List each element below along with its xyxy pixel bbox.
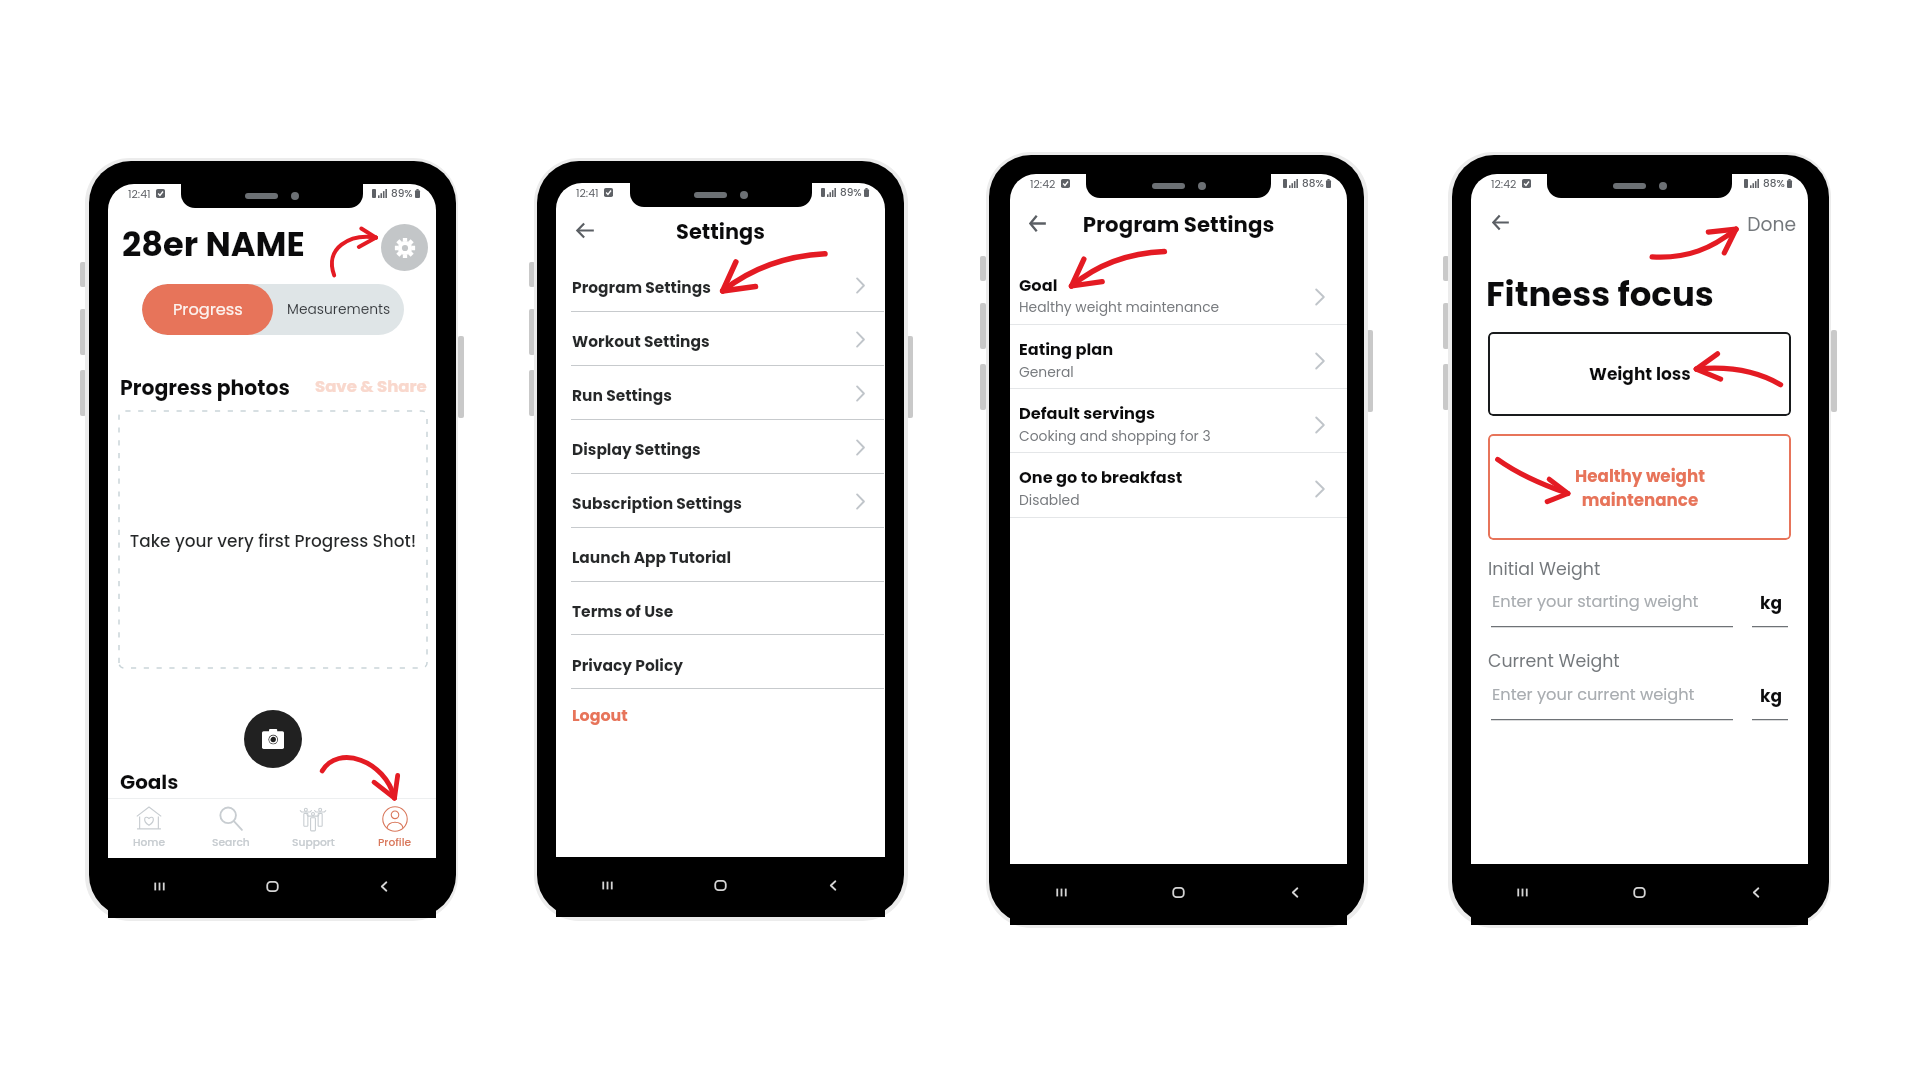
button[interactable]: Back [1493,215,1509,230]
staticText: 12:41 [128,186,151,201]
staticText: Cooking and shopping for 3 [1019,426,1211,445]
staticText: 89% [840,185,862,200]
staticText: Logout [572,704,628,726]
staticText: 12:41 [576,185,599,200]
staticText: Settings [556,217,885,246]
staticText: Run Settings [572,385,672,407]
staticText: Search [212,835,250,850]
staticText: Workout Settings [572,331,710,353]
button[interactable]: Progress [142,284,273,335]
button[interactable]: Profile [354,799,436,857]
button[interactable] [556,635,885,689]
staticText: Enter your current weight [1492,683,1695,706]
button[interactable]: Settings [381,224,428,271]
staticText: 89% [391,186,413,201]
staticText: kg [1760,684,1783,708]
button[interactable] [556,473,885,527]
staticText: Enter your starting weight [1492,590,1699,613]
staticText: 88% [1302,176,1324,191]
button[interactable] [556,311,885,365]
button[interactable] [556,527,885,581]
staticText: Display Settings [572,439,701,461]
staticText: Program Settings [572,277,711,299]
staticText: Home [133,835,166,850]
staticText: 12:42 [1491,176,1517,191]
button[interactable]: Done [1471,211,1796,237]
staticText: Terms of Use [572,601,674,623]
staticText: Privacy Policy [572,655,683,677]
staticText: Default servings [1019,402,1156,425]
staticText: Goals [120,768,179,796]
staticText: Disabled [1019,490,1080,509]
staticText: Subscription Settings [572,493,742,515]
staticText: Progress [173,298,243,321]
button[interactable]: Back [1030,215,1046,232]
button[interactable]: Search [190,799,272,857]
staticText: One go to breakfast [1019,466,1183,489]
staticText: Eating plan [1019,338,1114,361]
button[interactable] [1010,260,1347,324]
button[interactable]: Save & Share [315,375,427,398]
staticText: Program Settings [1010,210,1347,240]
staticText: Fitness focus [1486,270,1714,318]
staticText: General [1019,362,1074,381]
button[interactable] [1010,453,1347,517]
button[interactable]: Healthy weight maintenance [1488,434,1791,540]
staticText: Weight loss [1589,362,1691,386]
staticText: Goal [1019,274,1058,297]
button[interactable] [1010,389,1347,453]
button[interactable] [556,581,885,635]
button[interactable] [556,419,885,473]
staticText: Support [292,835,335,850]
staticText: 88% [1763,176,1785,191]
button[interactable]: Measurements [273,284,404,335]
button[interactable]: Home [108,799,190,857]
staticText: Healthy weight maintenance [1019,297,1220,316]
button[interactable] [1010,325,1347,389]
staticText: Profile [378,835,412,850]
button[interactable] [556,365,885,419]
staticText: Current Weight [1488,649,1620,673]
staticText: Initial Weight [1488,557,1601,581]
button[interactable]: Support [272,799,354,857]
button[interactable]: Back [577,223,594,238]
staticText: Take your very first Progress Shot! [109,529,436,553]
staticText: Progress photos [120,374,290,403]
button[interactable] [556,257,885,311]
staticText: Healthy weight maintenance [1575,464,1705,511]
staticText: 28er NAME [122,221,305,268]
staticText: 12:42 [1030,176,1056,191]
staticText: Measurements [287,300,391,319]
button[interactable]: Take photo [244,710,302,768]
button[interactable]: Weight loss [1488,332,1791,416]
staticText: kg [1760,591,1783,615]
staticText: Launch App Tutorial [572,547,732,569]
